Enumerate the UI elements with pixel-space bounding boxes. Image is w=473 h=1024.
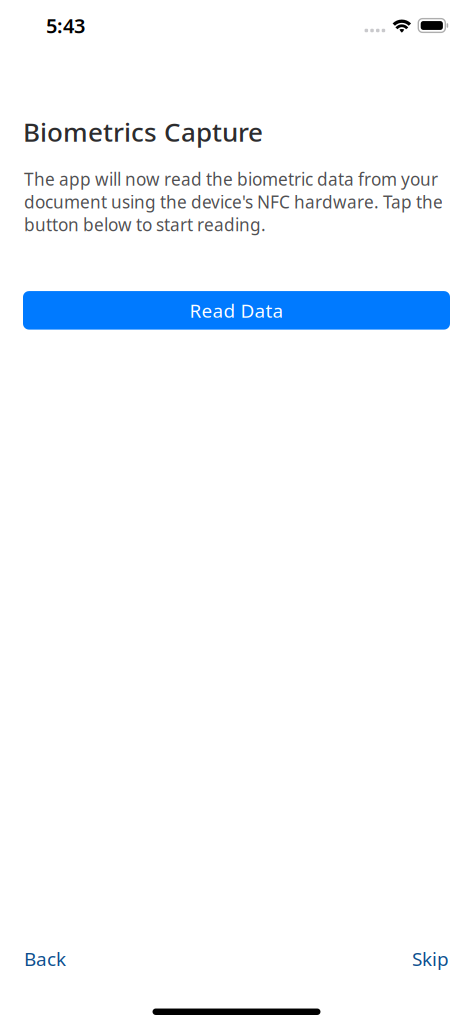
staticText: Back [24,946,66,971]
button[interactable]: Read Data [23,291,450,330]
button[interactable]: Skip [396,935,473,982]
staticText: Skip [412,946,449,971]
staticText: Read Data [189,297,283,323]
staticText: 5:43 [46,12,85,39]
button[interactable]: Back [0,935,82,982]
staticText: Biometrics Capture [23,114,263,149]
staticText: The app will now read the biometric data… [24,167,443,236]
